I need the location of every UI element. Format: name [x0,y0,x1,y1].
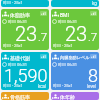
staticText: level [87,84,97,89]
staticText: 23 [65,22,88,45]
button[interactable]: 基礎代謝 [1,52,49,90]
button[interactable]: Graph [90,54,97,59]
staticText: .7 [38,30,48,44]
staticText: 内臓脂肪レベル [60,55,90,60]
staticText: 昨日 06:31 [58,19,77,24]
button[interactable]: 昨日 - 25x1 [1,0,49,7]
staticText: 体脂肪率 [10,12,30,18]
staticText: 昨日 - 25x1 [53,43,73,48]
staticText: 昨日 - 25x1 [3,0,23,5]
staticText: 1,590 [4,65,48,86]
staticText: kcal [38,84,47,89]
button[interactable]: 体脂肪率 [1,9,49,50]
button[interactable]: 内臓脂肪レベル [51,52,99,90]
button[interactable]: 体年齢 [51,92,99,100]
staticText: 昨日 06:31 [8,19,27,24]
button[interactable]: Graph [40,11,47,16]
staticText: 昨日 06:31 [58,62,77,67]
button[interactable]: Graph [90,11,97,16]
staticText: 昨日 06:31 [8,62,27,67]
staticText: 基礎代謝 [10,55,30,61]
staticText: 骨格筋率 [10,94,30,100]
staticText: 昨日 - 25x1 [3,43,23,48]
staticText: 体年齢 [60,94,75,100]
staticText: kg [92,1,97,6]
staticText: BMI [60,12,69,18]
staticText: 昨日 - 25x1 [53,83,73,88]
staticText: 23 [15,22,38,45]
staticText: 昨日 - 25x1 [3,83,23,88]
button[interactable]: Graph [40,54,47,59]
staticText: 8 [88,65,98,86]
button[interactable]: kg [51,0,99,7]
button[interactable]: 骨格筋率 [1,92,49,100]
staticText: .7 [88,30,98,44]
button[interactable]: BMI [51,9,99,50]
